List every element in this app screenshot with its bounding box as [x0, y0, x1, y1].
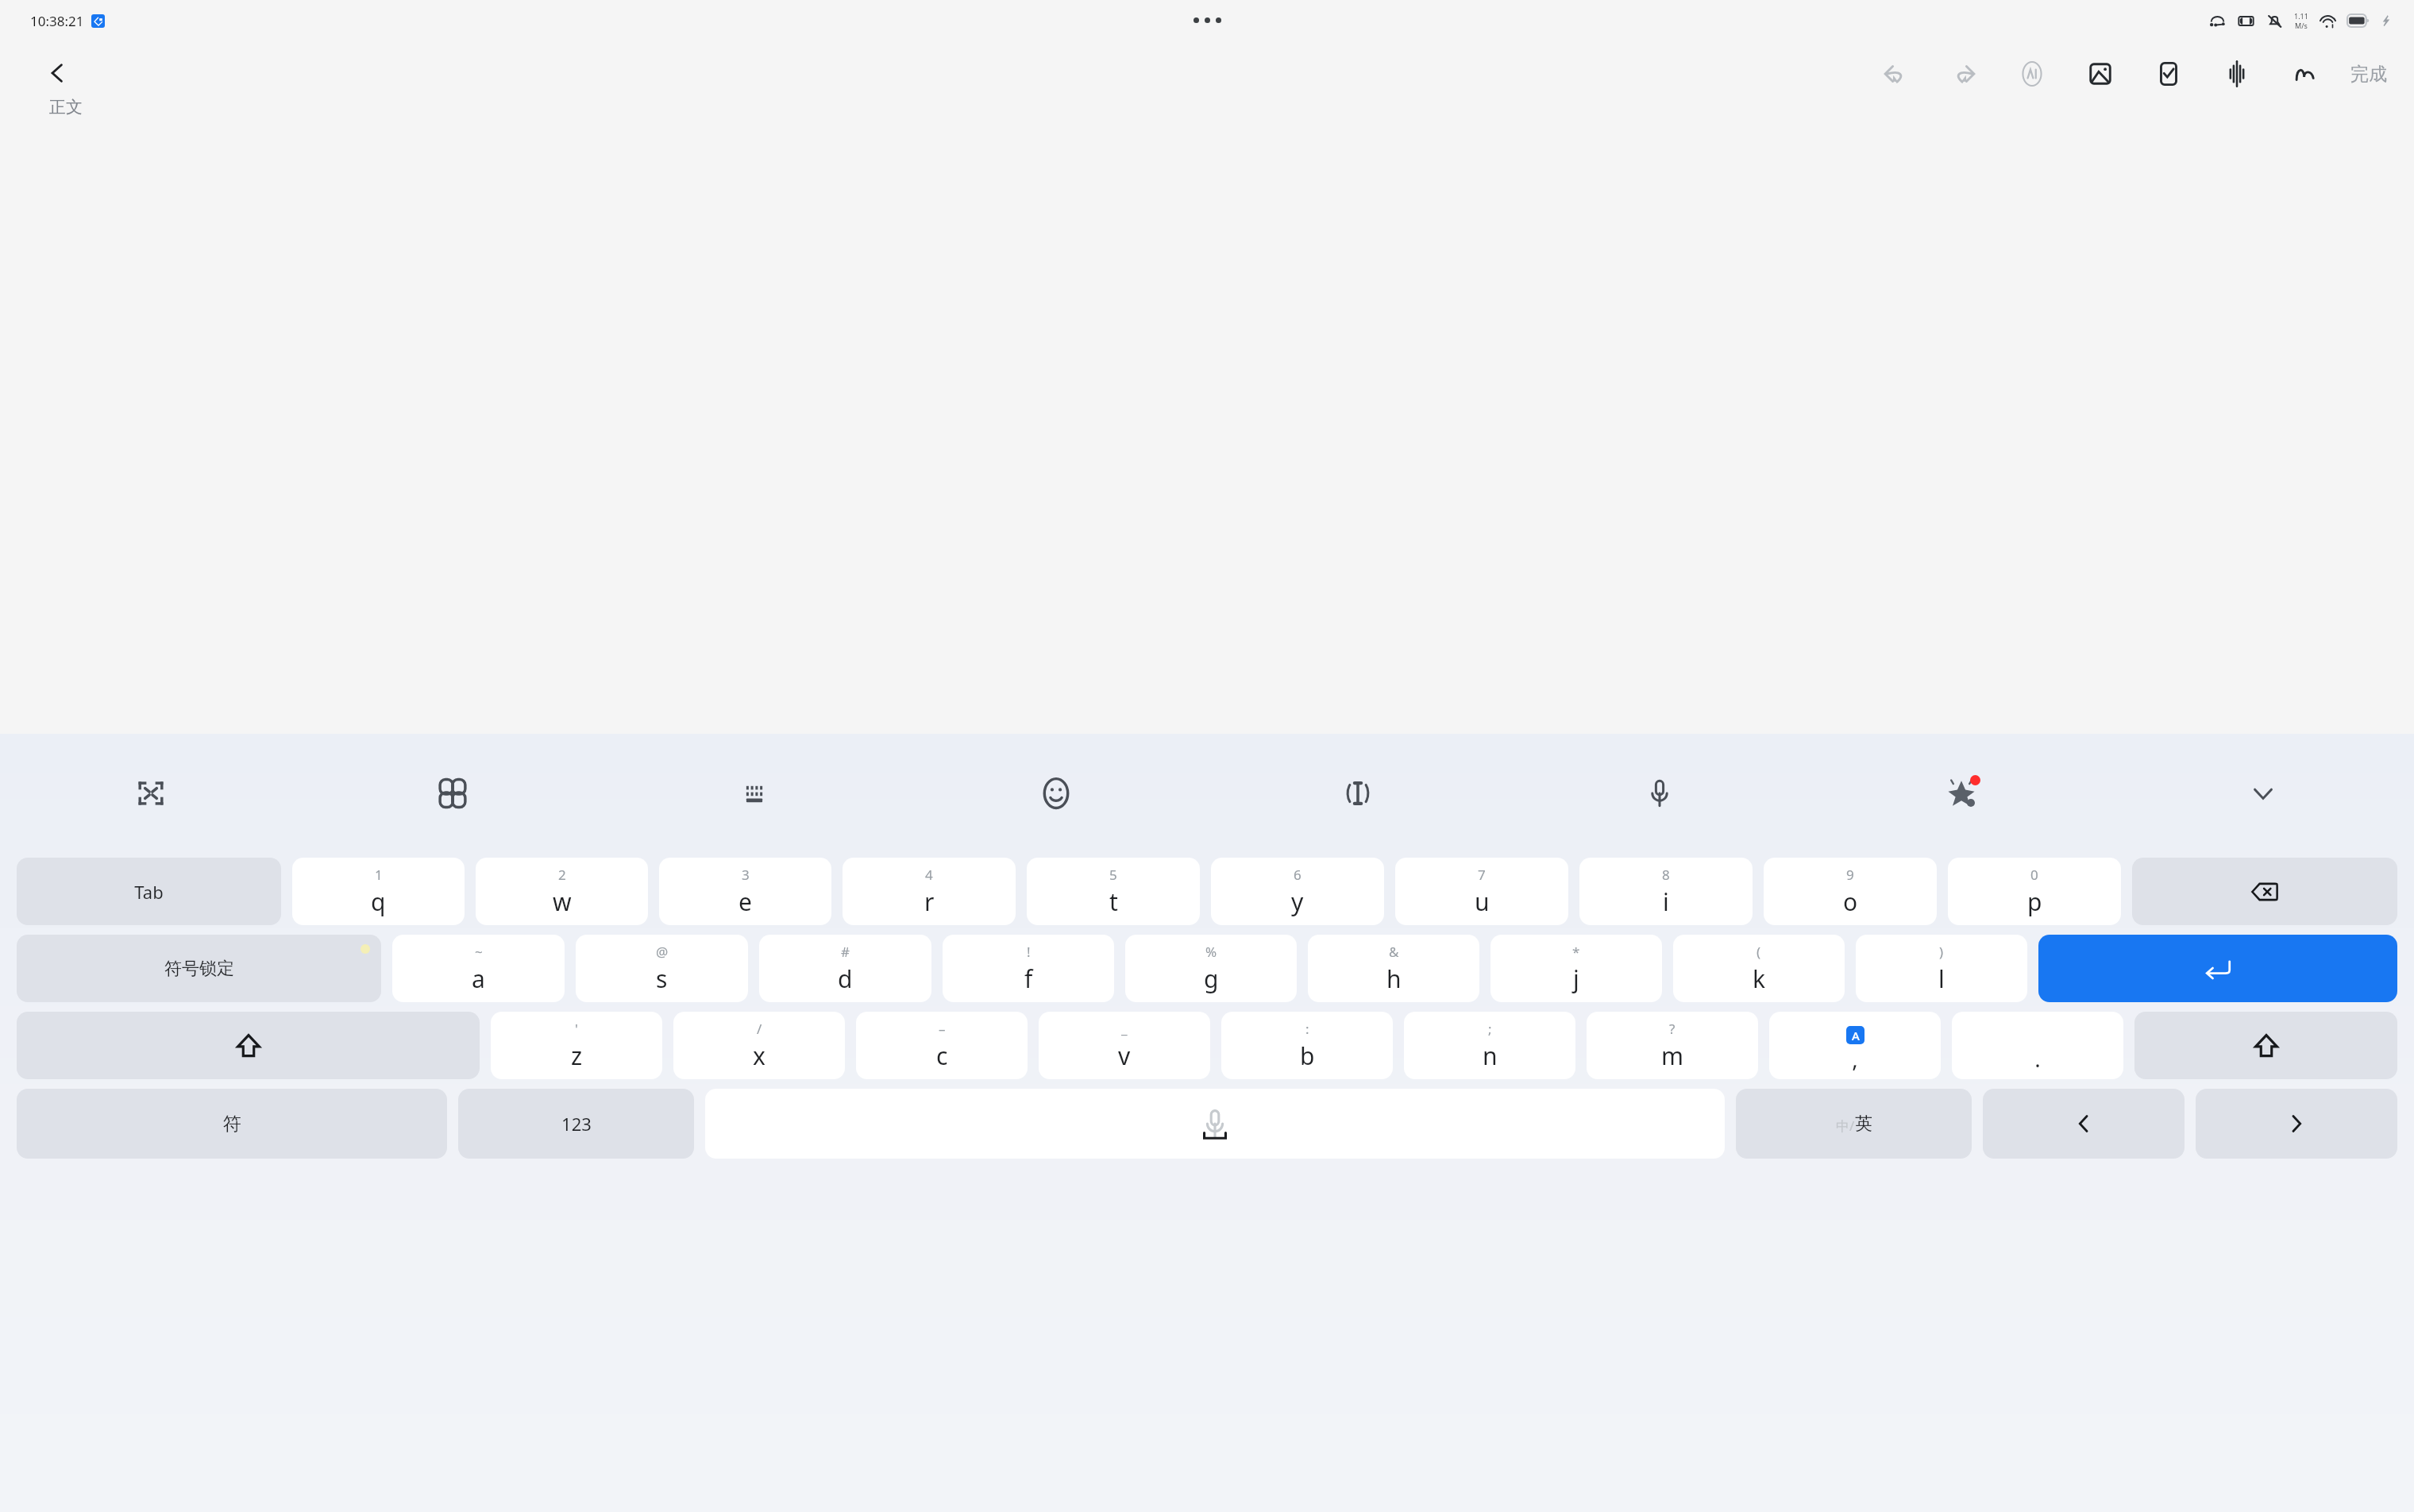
button[interactable]: 5 [1027, 858, 1200, 925]
staticText: 4 [925, 866, 933, 884]
button[interactable]: Collapse keyboard [0, 734, 302, 853]
button[interactable]: Redo [1930, 49, 1998, 98]
button[interactable]: % [1125, 935, 1297, 1002]
button[interactable]: Move cursor [1207, 734, 1509, 853]
button[interactable]: @ [576, 935, 748, 1002]
button[interactable]: 7 [1395, 858, 1568, 925]
button[interactable]: 1 [292, 858, 465, 925]
button[interactable]: 8 [1579, 858, 1753, 925]
staticText: ' [575, 1020, 578, 1038]
button[interactable]: _ [1039, 1012, 1210, 1079]
staticText: 5 [1109, 866, 1117, 884]
staticText: 正文 [49, 97, 83, 118]
staticText: @ [656, 943, 669, 961]
button[interactable]: ) [1856, 935, 2027, 1002]
staticText: * [1572, 943, 1580, 961]
button[interactable]: , [1769, 1012, 1941, 1079]
staticText: ! [1027, 943, 1031, 961]
staticText: % [1205, 943, 1217, 961]
button[interactable]: ~ [392, 935, 565, 1002]
staticText: 6 [1294, 866, 1301, 884]
button[interactable]: ? [1587, 1012, 1758, 1079]
button[interactable]: space [705, 1089, 1725, 1159]
button[interactable]: shift [17, 1012, 480, 1079]
button[interactable]: Emoji [905, 734, 1207, 853]
staticText: ? [1669, 1020, 1676, 1038]
button[interactable]: shift [2134, 1012, 2397, 1079]
staticText: x [753, 1039, 765, 1072]
staticText: ; [1488, 1020, 1492, 1038]
staticText: A [1852, 1028, 1860, 1043]
staticText: _ [1121, 1020, 1128, 1038]
staticText: ) [1939, 943, 1944, 961]
button[interactable]: 3 [659, 858, 831, 925]
button[interactable]: # [759, 935, 931, 1002]
staticText: M/s [2295, 21, 2308, 30]
staticText: 10:38:21 [30, 12, 84, 30]
button[interactable]: 完成 [2350, 49, 2387, 98]
button[interactable]: 中 [1736, 1089, 1972, 1159]
staticText: 9 [1846, 866, 1854, 884]
staticText: 1.11 [2294, 11, 2308, 21]
button[interactable]: Keyboard [603, 734, 905, 853]
button[interactable]: : [1221, 1012, 1393, 1079]
button[interactable]: ( [1673, 935, 1845, 1002]
staticText: e [738, 885, 752, 918]
staticText: k [1753, 962, 1766, 995]
staticText: – [939, 1020, 946, 1038]
button[interactable]: 2 [476, 858, 648, 925]
button[interactable]: Record audio [2203, 49, 2271, 98]
button[interactable]: bksp [2132, 858, 2397, 925]
button[interactable]: 123 [458, 1089, 694, 1159]
button[interactable]: 0 [1948, 858, 2121, 925]
staticText: a [472, 962, 485, 995]
button[interactable]: Keyboard layouts [302, 734, 603, 853]
staticText: ~ [475, 943, 483, 961]
button[interactable]: Back [32, 48, 83, 98]
button[interactable]: Checklist [2134, 49, 2203, 98]
staticText: , [1852, 1043, 1858, 1074]
staticText: v [1118, 1039, 1131, 1072]
button[interactable]: Hide keyboard [2112, 734, 2414, 853]
button[interactable]: 6 [1211, 858, 1384, 925]
button[interactable]: – [856, 1012, 1028, 1079]
staticText: 中 [1836, 1118, 1849, 1135]
button[interactable]: Undo [1861, 49, 1930, 98]
staticText: h [1386, 962, 1402, 995]
button[interactable]: & [1308, 935, 1479, 1002]
staticText: l [1938, 962, 1945, 995]
staticText: 2 [558, 866, 566, 884]
button[interactable]: 4 [843, 858, 1016, 925]
button[interactable]: ! [943, 935, 1114, 1002]
staticText: m [1661, 1039, 1684, 1072]
button[interactable]: . [1952, 1012, 2123, 1079]
button[interactable]: 符号锁定 [17, 935, 381, 1002]
button[interactable]: 符 [17, 1089, 447, 1159]
button[interactable]: Tab [17, 858, 281, 925]
button[interactable]: Voice input [1509, 734, 1811, 853]
staticText: 8 [1662, 866, 1670, 884]
staticText: c [936, 1039, 948, 1072]
button[interactable]: Features [1811, 734, 2112, 853]
button[interactable]: AI [1998, 49, 2066, 98]
staticText: n [1483, 1039, 1498, 1072]
button[interactable]: Handwriting [2271, 49, 2339, 98]
staticText: # [841, 943, 850, 961]
button[interactable]: ' [491, 1012, 662, 1079]
button[interactable]: Insert image [2066, 49, 2134, 98]
staticText: y [1291, 885, 1304, 918]
button[interactable]: * [1490, 935, 1662, 1002]
button[interactable]: gt [2196, 1089, 2397, 1159]
button[interactable]: lt [1983, 1089, 2185, 1159]
staticText: 3 [742, 866, 750, 884]
staticText: q [371, 885, 386, 918]
staticText: f [1024, 962, 1033, 995]
button[interactable]: 9 [1764, 858, 1937, 925]
button[interactable]: enter [2038, 935, 2397, 1002]
staticText: p [2027, 885, 2042, 918]
staticText: d [838, 962, 853, 995]
button[interactable]: / [673, 1012, 845, 1079]
staticText: 7 [1478, 866, 1486, 884]
button[interactable]: ; [1404, 1012, 1575, 1079]
staticText: z [571, 1039, 583, 1072]
